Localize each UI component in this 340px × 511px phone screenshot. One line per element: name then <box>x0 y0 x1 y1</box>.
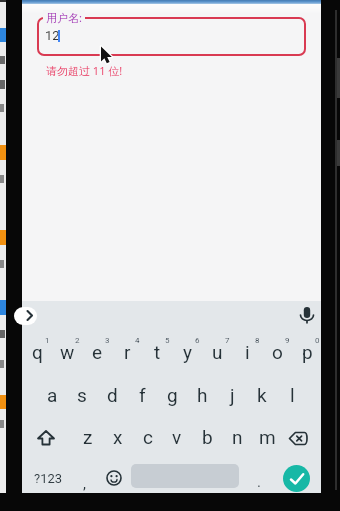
staticText: 1 <box>45 336 50 345</box>
staticText: t <box>154 341 161 363</box>
staticText: g <box>167 384 178 406</box>
staticText: p <box>302 341 313 363</box>
staticText: s <box>77 384 87 406</box>
staticText: 3 <box>105 336 110 345</box>
button[interactable]: k <box>247 373 277 416</box>
staticText: 2 <box>75 336 80 345</box>
button[interactable]: y <box>172 331 202 373</box>
button[interactable]: . <box>244 465 274 499</box>
button[interactable] <box>31 416 61 458</box>
staticText: v <box>172 426 182 448</box>
staticText: 请勿超过 11 位! <box>46 63 123 78</box>
button[interactable] <box>283 416 313 458</box>
button[interactable]: j <box>217 373 247 416</box>
staticText: h <box>197 384 208 406</box>
staticText: d <box>107 384 118 406</box>
button[interactable]: m <box>252 416 282 458</box>
staticText: 4 <box>135 336 140 345</box>
staticText: l <box>290 384 295 406</box>
button[interactable]: d <box>97 373 127 416</box>
button[interactable]: s <box>67 373 97 416</box>
staticText: k <box>257 384 267 406</box>
staticText: 0 <box>315 336 320 345</box>
staticText: . <box>257 473 261 491</box>
button[interactable]: v <box>162 416 192 458</box>
staticText: 7 <box>225 336 230 345</box>
button[interactable]: z <box>73 416 103 458</box>
staticText: 5 <box>165 336 170 345</box>
staticText: 6 <box>195 336 200 345</box>
staticText: b <box>202 426 213 448</box>
button[interactable]: c <box>133 416 163 458</box>
button[interactable]: x <box>103 416 133 458</box>
staticText: x <box>113 426 123 448</box>
staticText: 用户名: <box>46 10 82 25</box>
staticText: j <box>230 384 235 406</box>
staticText: r <box>124 341 131 363</box>
staticText: 9 <box>285 336 290 345</box>
button[interactable]: g <box>157 373 187 416</box>
button[interactable] <box>14 307 37 325</box>
button[interactable]: i <box>232 331 262 373</box>
staticText: y <box>183 341 192 363</box>
staticText: c <box>143 426 153 448</box>
staticText: m <box>259 426 276 448</box>
button[interactable]: ?123 <box>30 460 66 496</box>
button[interactable] <box>283 465 310 492</box>
button[interactable]: q <box>22 331 52 373</box>
button[interactable]: o <box>262 331 292 373</box>
button[interactable]: w <box>52 331 82 373</box>
button[interactable]: e <box>82 331 112 373</box>
staticText: q <box>32 341 43 363</box>
staticText: o <box>272 341 283 363</box>
staticText: 8 <box>255 336 260 345</box>
staticText: u <box>212 341 223 363</box>
button[interactable] <box>37 17 306 56</box>
button[interactable]: a <box>37 373 67 416</box>
button[interactable]: r <box>112 331 142 373</box>
staticText: i <box>245 341 250 363</box>
button[interactable]: u <box>202 331 232 373</box>
staticText: z <box>83 426 93 448</box>
button[interactable]: l <box>277 373 307 416</box>
staticText: a <box>47 384 58 406</box>
staticText: e <box>92 341 103 363</box>
staticText: ?123 <box>34 471 63 486</box>
button[interactable]: h <box>187 373 217 416</box>
staticText: n <box>232 426 243 448</box>
staticText: , <box>83 475 86 493</box>
button[interactable]: b <box>192 416 222 458</box>
button[interactable]: n <box>222 416 252 458</box>
button[interactable]: , <box>69 467 99 501</box>
button[interactable]: t <box>142 331 172 373</box>
staticText: w <box>60 341 75 363</box>
staticText: 12 <box>45 28 60 43</box>
button[interactable]: f <box>127 373 157 416</box>
staticText: f <box>139 384 146 406</box>
button[interactable]: p <box>292 331 322 373</box>
